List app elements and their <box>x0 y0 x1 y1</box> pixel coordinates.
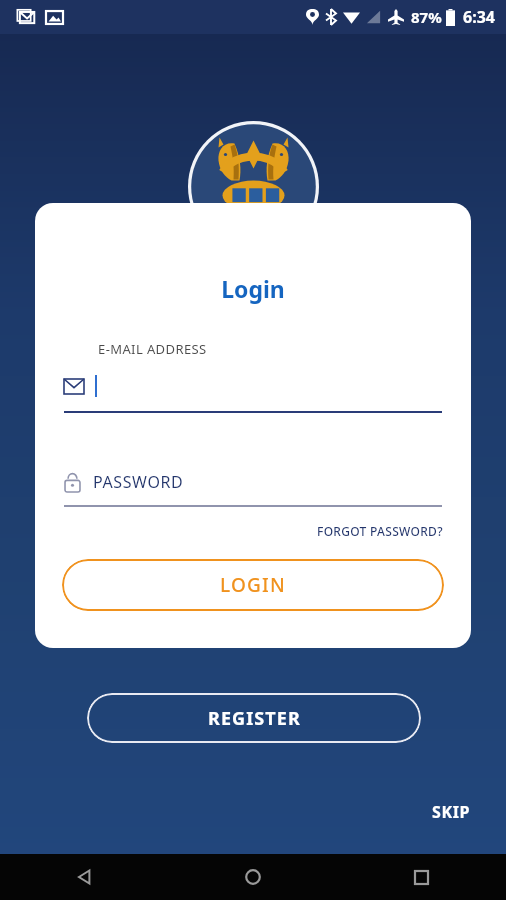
button[interactable]: FORGOT PASSWORD? <box>315 521 445 541</box>
button[interactable]: Recent apps <box>337 854 506 900</box>
button[interactable]: Home <box>168 854 337 900</box>
button[interactable]: REGISTER <box>87 693 421 743</box>
button[interactable]: PASSWORD <box>64 467 442 497</box>
staticText: SKIP <box>432 801 471 823</box>
staticText: 87% <box>411 7 442 27</box>
button[interactable] <box>64 369 442 403</box>
staticText: FORGOT PASSWORD? <box>317 523 443 539</box>
button[interactable]: Back <box>0 854 168 900</box>
staticText: PASSWORD <box>93 471 184 493</box>
staticText: REGISTER <box>208 706 301 731</box>
staticText: LOGIN <box>220 572 286 598</box>
staticText: E-MAIL ADDRESS <box>98 340 207 358</box>
staticText: 6:34 <box>463 6 495 28</box>
staticText: Login <box>35 273 471 304</box>
button[interactable]: LOGIN <box>62 559 444 611</box>
button[interactable]: SKIP <box>424 795 479 829</box>
